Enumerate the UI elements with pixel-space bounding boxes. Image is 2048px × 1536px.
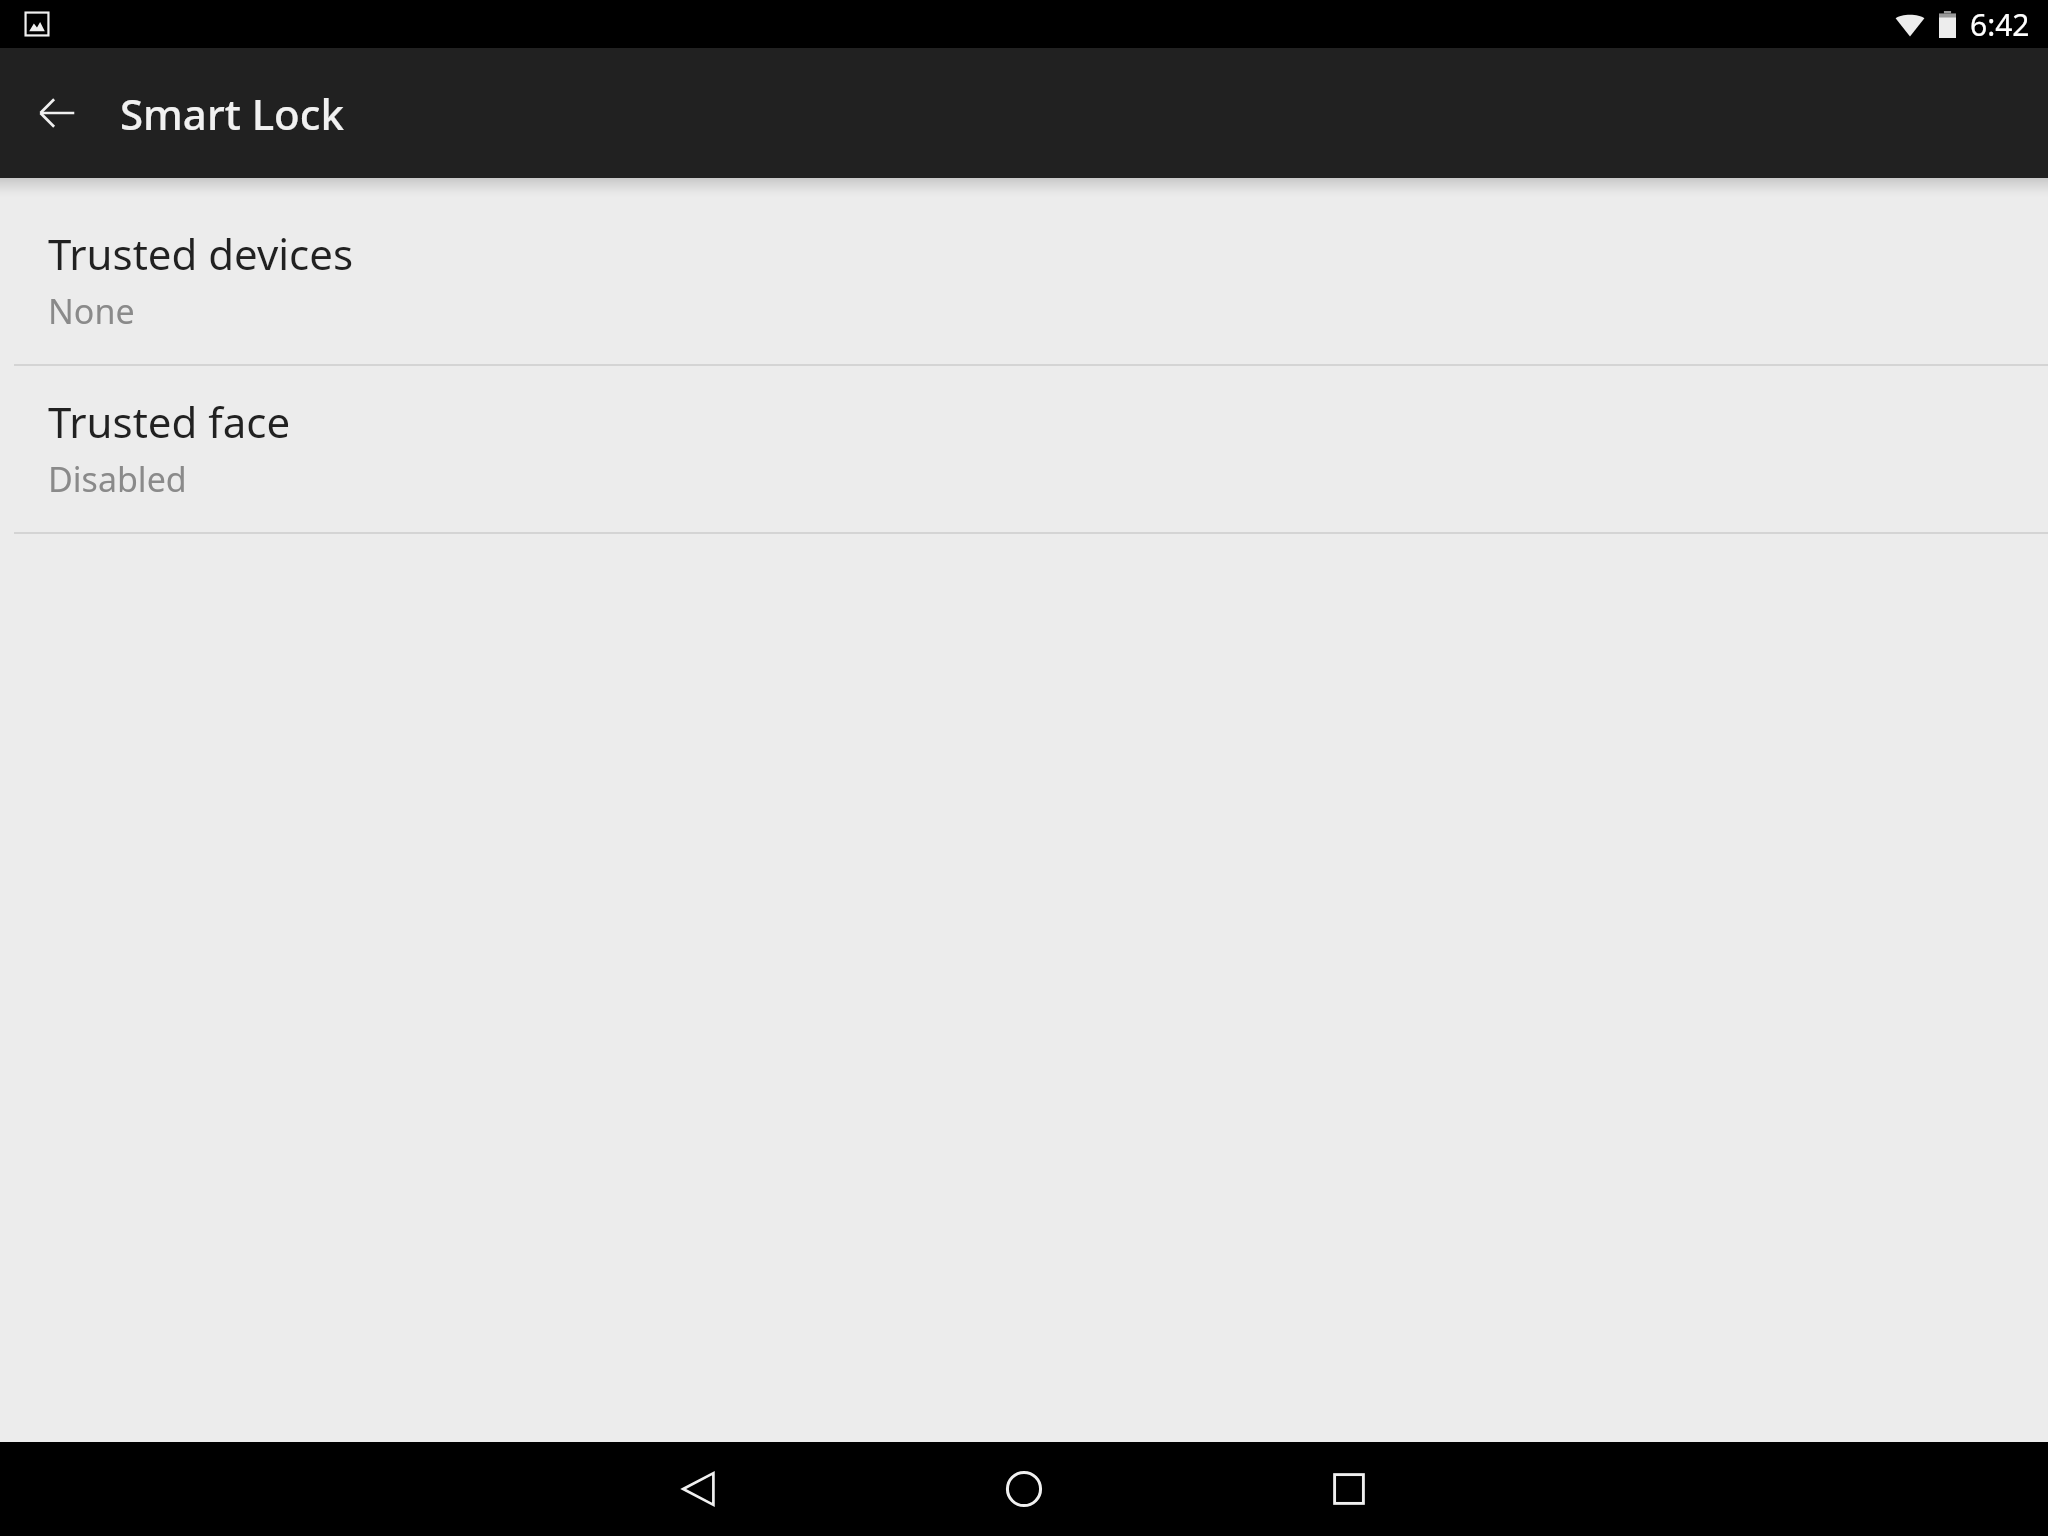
staticText: Disabled: [48, 456, 187, 502]
button[interactable]: Trusted face: [0, 366, 2048, 532]
staticText: None: [48, 288, 135, 334]
staticText: Smart Lock: [120, 85, 344, 142]
staticText: Trusted devices: [48, 225, 354, 282]
button[interactable]: Home: [977, 1442, 1071, 1536]
staticText: Trusted face: [48, 393, 291, 450]
button[interactable]: Recents: [1302, 1442, 1396, 1536]
button[interactable]: Back: [13, 69, 101, 157]
button[interactable]: Trusted devices: [0, 198, 2048, 364]
button[interactable]: Back: [652, 1442, 746, 1536]
staticText: 6:42: [1970, 4, 2030, 45]
